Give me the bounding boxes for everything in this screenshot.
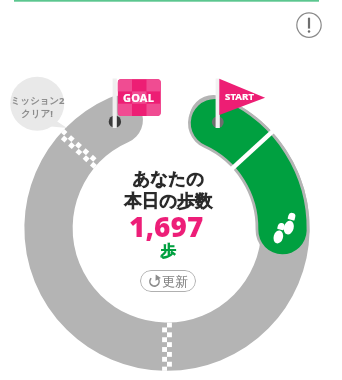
staticText: GOAL [123, 90, 155, 105]
button[interactable]: Info [292, 8, 326, 42]
staticText: START [225, 90, 255, 103]
staticText: クリア! [21, 107, 53, 120]
staticText: 歩 [161, 242, 176, 261]
button[interactable]: 更新 [140, 270, 196, 292]
staticText: ミッション2 [10, 94, 65, 107]
staticText: 本日の歩数 [124, 190, 212, 212]
staticText: 更新 [162, 273, 188, 289]
staticText: あなたの [132, 168, 204, 190]
staticText: 1,697 [129, 207, 204, 245]
